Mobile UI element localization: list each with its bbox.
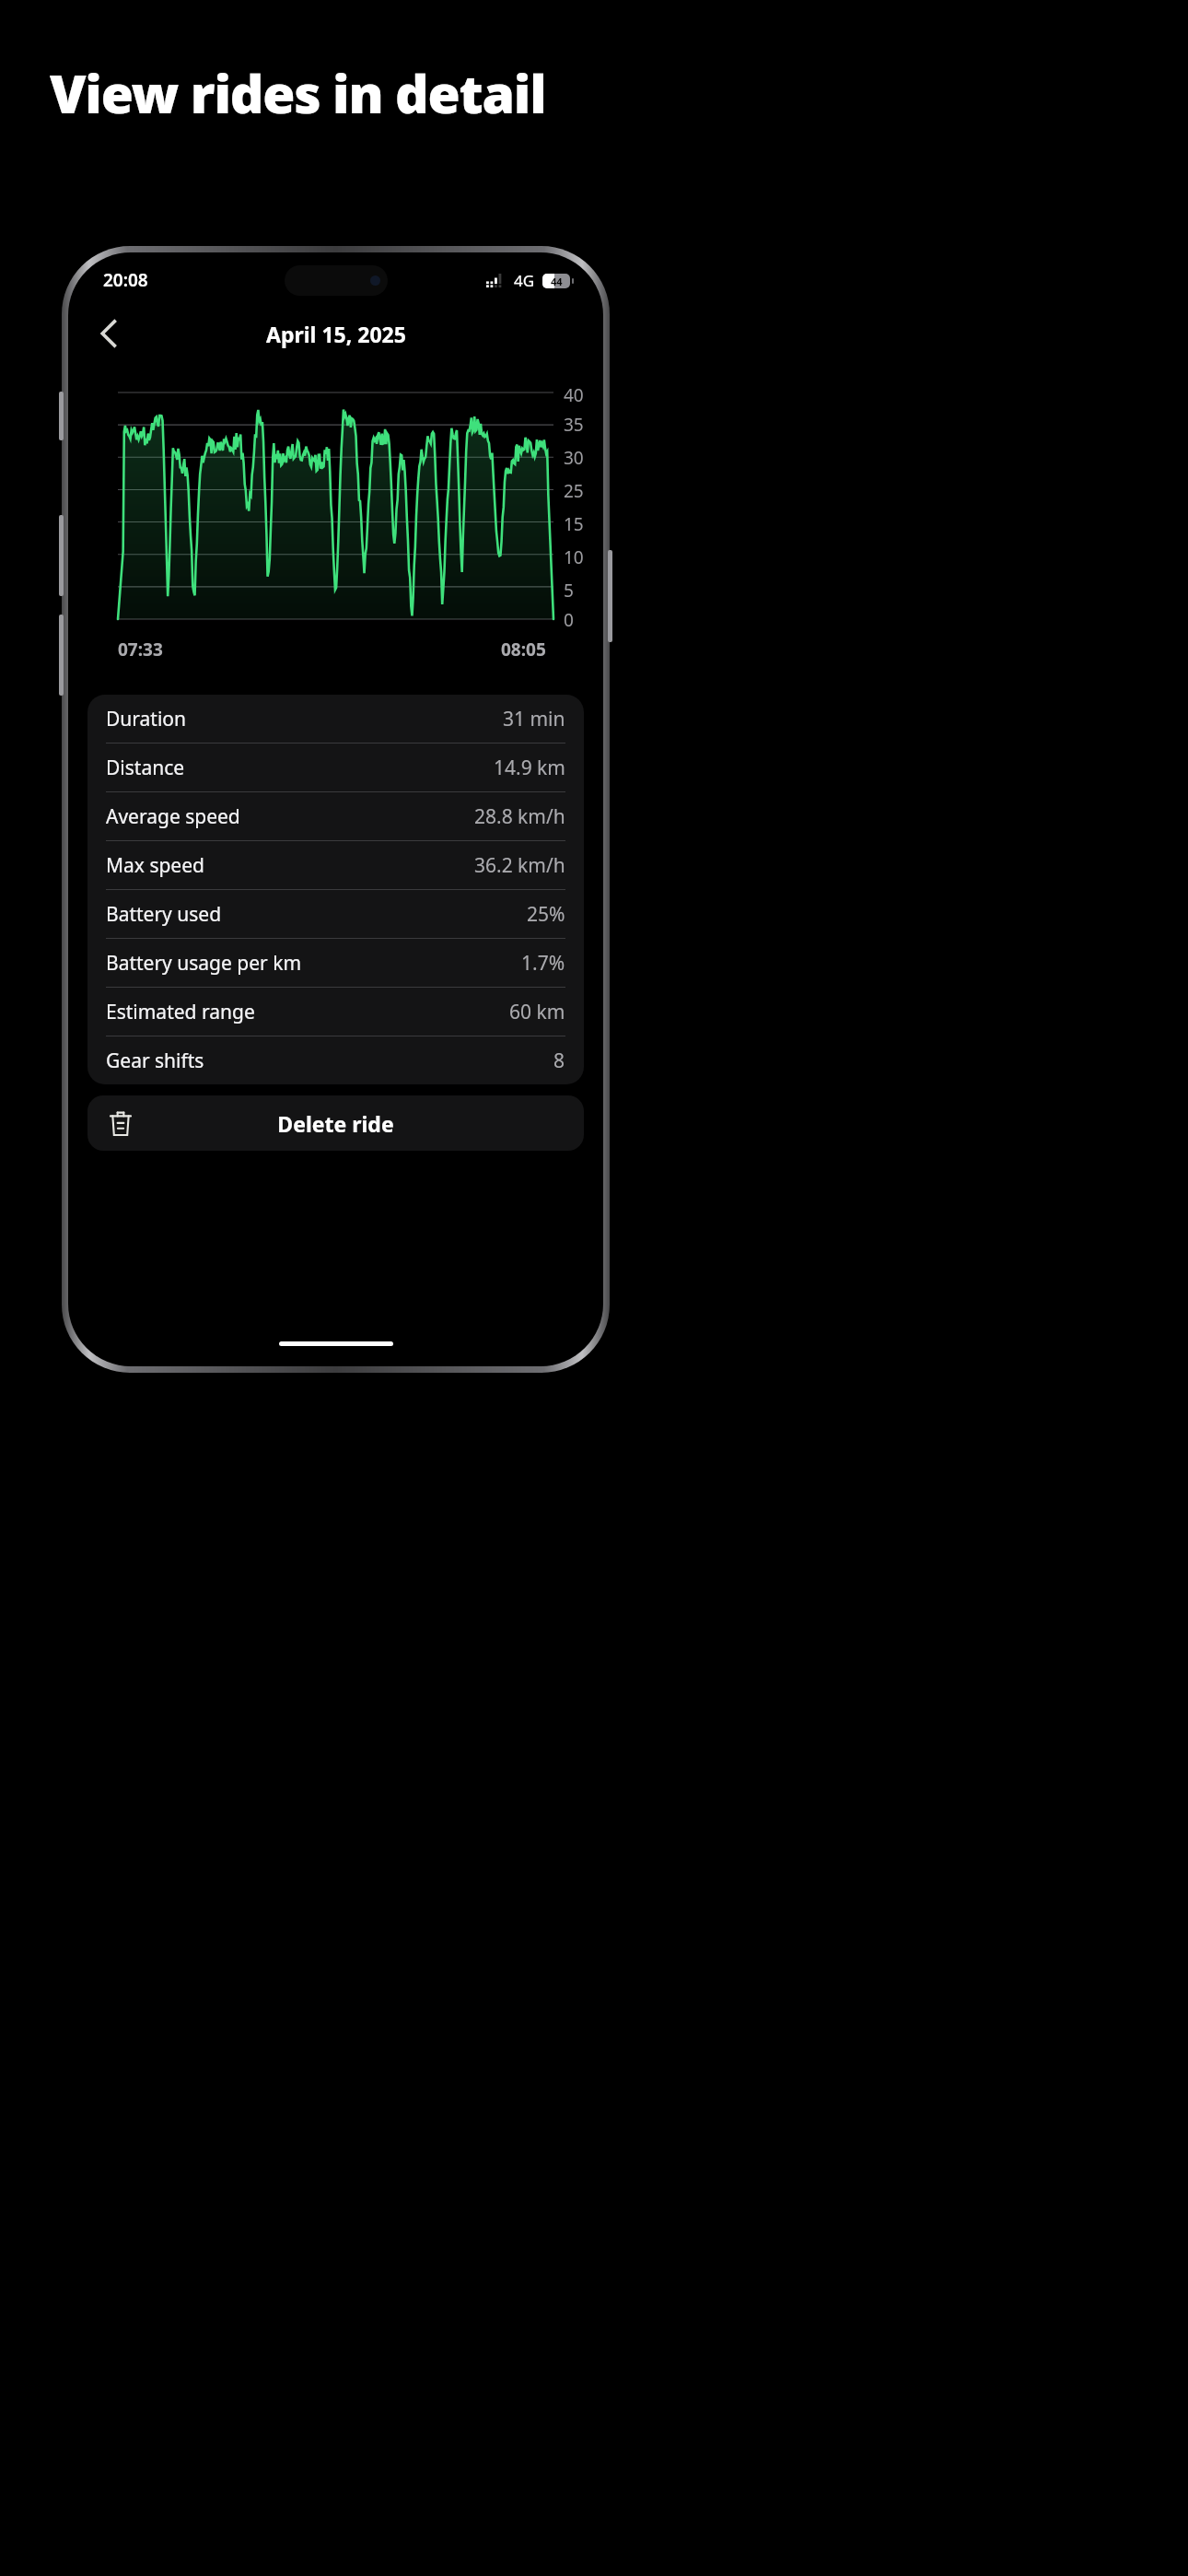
button[interactable]: Duration: [87, 695, 584, 743]
button[interactable]: Battery usage per km: [87, 939, 584, 987]
staticText: Estimated range: [106, 999, 255, 1025]
button[interactable]: Gear shifts: [87, 1036, 584, 1084]
staticText: 14.9 km: [494, 755, 565, 781]
staticText: 8: [553, 1048, 565, 1074]
button[interactable]: Delete ride: [87, 1095, 584, 1151]
button[interactable]: Average speed: [87, 792, 584, 840]
button[interactable]: Back: [85, 310, 133, 357]
staticText: 07:33: [118, 638, 163, 662]
staticText: 4G: [514, 270, 535, 291]
staticText: 20:08: [103, 268, 148, 292]
staticText: 08:05: [501, 638, 546, 662]
button[interactable]: Estimated range: [87, 988, 584, 1036]
staticText: April 15, 2025: [266, 320, 406, 348]
staticText: 30: [564, 446, 584, 464]
staticText: 25%: [527, 901, 565, 928]
staticText: Battery used: [106, 901, 222, 928]
staticText: 5: [564, 579, 574, 597]
staticText: 10: [564, 545, 584, 564]
button[interactable]: Max speed: [87, 841, 584, 889]
staticText: 44: [551, 275, 563, 288]
staticText: 36.2 km/h: [474, 852, 565, 879]
staticText: Gear shifts: [106, 1048, 204, 1074]
staticText: 0: [564, 608, 574, 626]
staticText: 60 km: [509, 999, 565, 1025]
button[interactable]: Battery used: [87, 890, 584, 938]
staticText: 15: [564, 512, 584, 531]
staticText: 1.7%: [521, 950, 565, 977]
staticText: 28.8 km/h: [474, 803, 565, 830]
staticText: Max speed: [106, 852, 204, 879]
staticText: 31 min: [503, 706, 565, 732]
staticText: Average speed: [106, 803, 240, 830]
staticText: Duration: [106, 706, 187, 732]
staticText: Distance: [106, 755, 185, 781]
staticText: View rides in detail: [50, 57, 546, 129]
button[interactable]: Distance: [87, 744, 584, 791]
staticText: Battery usage per km: [106, 950, 302, 977]
staticText: Delete ride: [277, 1109, 394, 1138]
staticText: 25: [564, 479, 584, 498]
staticText: 35: [564, 413, 584, 431]
staticText: 40: [564, 383, 584, 402]
